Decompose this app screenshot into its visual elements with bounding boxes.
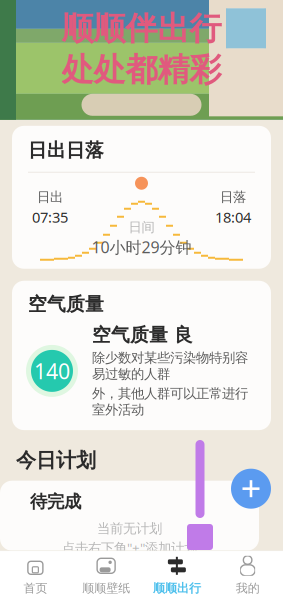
staticText: 07:35 — [32, 207, 68, 227]
staticText: 待完成 — [30, 491, 81, 512]
staticText: 日出 — [37, 189, 63, 205]
staticText: 顺顺伴出行 — [61, 9, 221, 48]
staticText: 10小时29分钟 — [91, 236, 191, 258]
staticText: 空气质量 良 — [92, 324, 193, 347]
staticText: 顺顺壁纸 — [82, 581, 130, 594]
staticText: 日落 — [220, 189, 246, 205]
staticText: 外，其他人群可以正常进行室外活动 — [92, 385, 248, 418]
staticText: 日出日落 — [28, 139, 104, 162]
staticText: 我的 — [236, 581, 260, 594]
staticText: 日间 — [128, 219, 154, 235]
button[interactable]: 顺顺出行 — [141, 551, 212, 594]
staticText: 点击右下角"+"添加计划 — [62, 539, 197, 556]
button[interactable]: 添加计划 — [231, 469, 271, 509]
staticText: 18:04 — [215, 207, 251, 227]
staticText: 处处都精彩 — [61, 50, 221, 89]
button[interactable]: 首页 — [0, 551, 71, 594]
staticText: 今日计划 — [16, 448, 96, 473]
staticText: 当前无计划 — [97, 520, 162, 537]
staticText: 140 — [34, 357, 70, 385]
button[interactable]: 我的 — [212, 551, 283, 594]
staticText: 空气质量 — [28, 293, 104, 316]
button[interactable]: 顺顺壁纸 — [71, 551, 142, 594]
staticText: 除少数对某些污染物特别容易过敏的人群 — [92, 350, 248, 382]
staticText: 首页 — [23, 581, 47, 594]
staticText: 顺顺出行 — [153, 581, 201, 594]
